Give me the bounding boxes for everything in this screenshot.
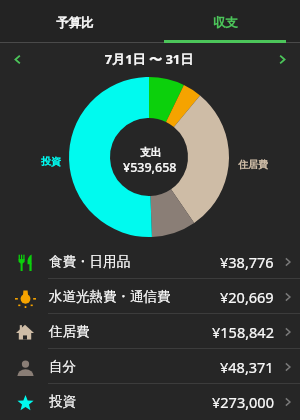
staticText: 予算比 <box>56 15 94 31</box>
button[interactable]: Previous period <box>0 43 34 75</box>
button[interactable]: 収支 <box>150 0 300 43</box>
button[interactable]: 予算比 <box>0 0 150 43</box>
staticText: ¥158,842 <box>212 322 274 342</box>
button[interactable]: 水道光熱費・通信費 <box>0 279 300 314</box>
button[interactable]: 住居費 <box>0 314 300 349</box>
staticText: 収支 <box>213 15 238 31</box>
staticText: ¥273,000 <box>212 392 274 412</box>
staticText: ¥539,658 <box>123 159 177 176</box>
button[interactable]: 食費・日用品 <box>0 244 300 279</box>
staticText: ¥38,776 <box>220 252 274 272</box>
staticText: 投資 <box>49 393 76 410</box>
staticText: ¥20,669 <box>220 287 274 307</box>
staticText: 水道光熱費・通信費 <box>49 288 171 305</box>
button[interactable]: 自分 <box>0 349 300 384</box>
staticText: 投資 <box>41 155 61 168</box>
staticText: 住居費 <box>49 323 90 340</box>
staticText: 住居費 <box>238 158 268 171</box>
button[interactable]: 投資 <box>0 384 300 419</box>
staticText: 自分 <box>49 358 76 375</box>
staticText: 食費・日用品 <box>49 253 130 270</box>
staticText: ¥48,371 <box>220 357 274 377</box>
staticText: 支出 <box>140 146 161 159</box>
staticText: 7月1日 〜 31日 <box>34 50 264 68</box>
button[interactable]: Next period <box>264 43 300 75</box>
